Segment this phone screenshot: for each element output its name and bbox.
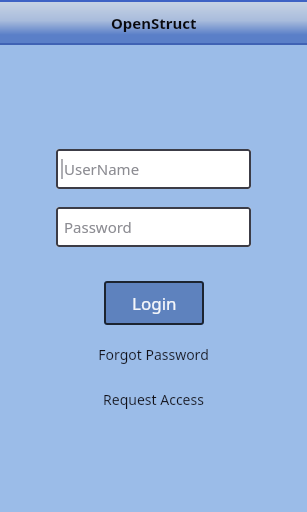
button[interactable]: Forgot Password (0, 342, 307, 366)
staticText: Password (64, 217, 132, 237)
staticText: OpenStruct (111, 13, 197, 33)
staticText: Forgot Password (98, 345, 209, 364)
button[interactable]: Request Access (0, 387, 307, 411)
button[interactable]: Login (104, 281, 204, 325)
button[interactable]: Password (56, 207, 251, 247)
staticText: Request Access (103, 390, 204, 409)
button[interactable]: UserName (56, 149, 251, 189)
staticText: Login (132, 292, 177, 315)
staticText: UserName (64, 159, 140, 179)
